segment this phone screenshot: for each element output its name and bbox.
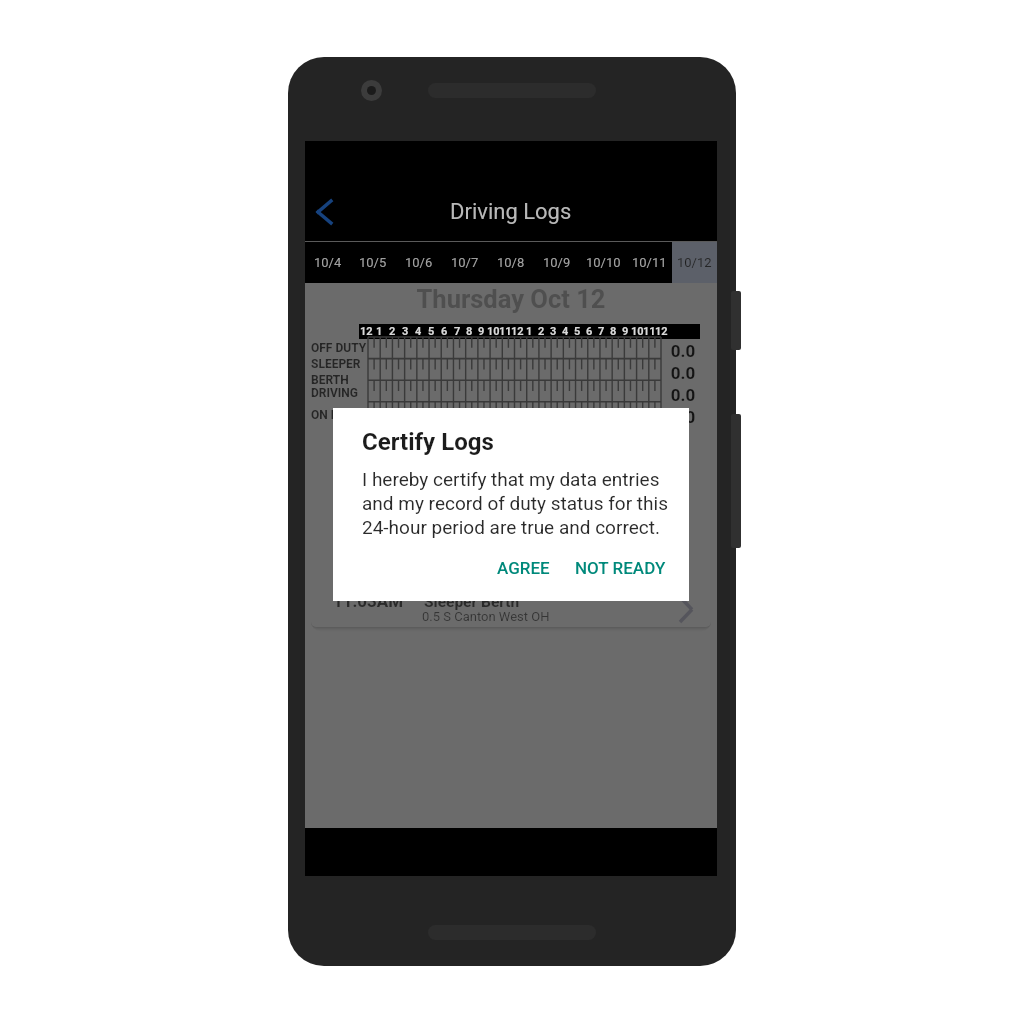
staticText: DRIVING — [311, 386, 358, 400]
staticText: 8 — [610, 325, 617, 338]
staticText: OFF DUTY — [311, 341, 367, 355]
staticText: 3 — [402, 325, 409, 338]
staticText: 0.5 S Canton West OH — [422, 609, 550, 624]
button[interactable]: 10/9 — [534, 242, 580, 283]
button[interactable]: 10/11 — [626, 242, 672, 283]
button[interactable]: 10/5 — [350, 242, 396, 283]
staticText: ON DUTY — [311, 408, 362, 422]
staticText: 12 — [511, 325, 524, 338]
staticText: 11:03AM — [333, 591, 404, 611]
button[interactable]: 10/4 — [305, 242, 350, 283]
button[interactable]: AGREE — [487, 552, 560, 584]
staticText: 9 — [622, 325, 629, 338]
staticText: 10/6 — [405, 255, 433, 270]
staticText: 1 — [376, 325, 383, 338]
staticText: NOT READY — [575, 558, 666, 578]
staticText: 2 — [538, 325, 545, 338]
staticText: 0.0 — [662, 407, 704, 427]
staticText: AGREE — [497, 558, 550, 578]
staticText: 0.0 — [662, 341, 704, 361]
button[interactable]: NOT READY — [565, 552, 676, 584]
staticText: 1 — [526, 325, 533, 338]
staticText: 10/9 — [543, 255, 571, 270]
staticText: 11 — [499, 325, 512, 338]
staticText: 10/12 — [677, 255, 712, 270]
staticText: 2 — [389, 325, 396, 338]
staticText: 10/10 — [586, 255, 621, 270]
staticText: 5 — [428, 325, 435, 338]
staticText: 7 — [454, 325, 461, 338]
staticText: 7 — [598, 325, 605, 338]
button[interactable]: 10/10 — [580, 242, 626, 283]
button[interactable]: 10/12 — [672, 242, 717, 283]
staticText: 5 — [574, 325, 581, 338]
staticText: Thursday Oct 12 — [305, 284, 717, 314]
staticText: 10 — [631, 325, 644, 338]
staticText: 12 — [655, 325, 668, 338]
staticText: 10/8 — [497, 255, 525, 270]
staticText: Certify Logs — [362, 428, 494, 456]
staticText: Driving Logs — [450, 199, 572, 225]
staticText: I hereby certify that my data entries an… — [362, 468, 668, 539]
button[interactable]: 10/8 — [488, 242, 534, 283]
staticText: 10 — [487, 325, 500, 338]
staticText: SLEEPER — [311, 357, 361, 371]
staticText: 6 — [441, 325, 448, 338]
staticText: 10/5 — [359, 255, 387, 270]
button[interactable]: 10/6 — [396, 242, 442, 283]
staticText: 10/4 — [314, 255, 342, 270]
staticText: BERTH — [311, 373, 349, 387]
staticText: 9 — [478, 325, 485, 338]
staticText: Sleeper Berth — [424, 593, 520, 611]
staticText: 6 — [586, 325, 593, 338]
staticText: 12 — [360, 325, 373, 338]
button[interactable]: Open log entry — [666, 583, 706, 623]
staticText: 0.0 — [662, 363, 704, 383]
staticText: 4 — [562, 325, 569, 338]
staticText: 10/7 — [451, 255, 479, 270]
button[interactable]: 10/7 — [442, 242, 488, 283]
staticText: 10/11 — [632, 255, 667, 270]
staticText: 3 — [550, 325, 557, 338]
staticText: 11 — [643, 325, 656, 338]
staticText: 4 — [415, 325, 422, 338]
staticText: 8 — [466, 325, 473, 338]
button[interactable] — [311, 283, 711, 627]
staticText: 0.0 — [662, 385, 704, 405]
button[interactable]: Back — [301, 179, 347, 225]
